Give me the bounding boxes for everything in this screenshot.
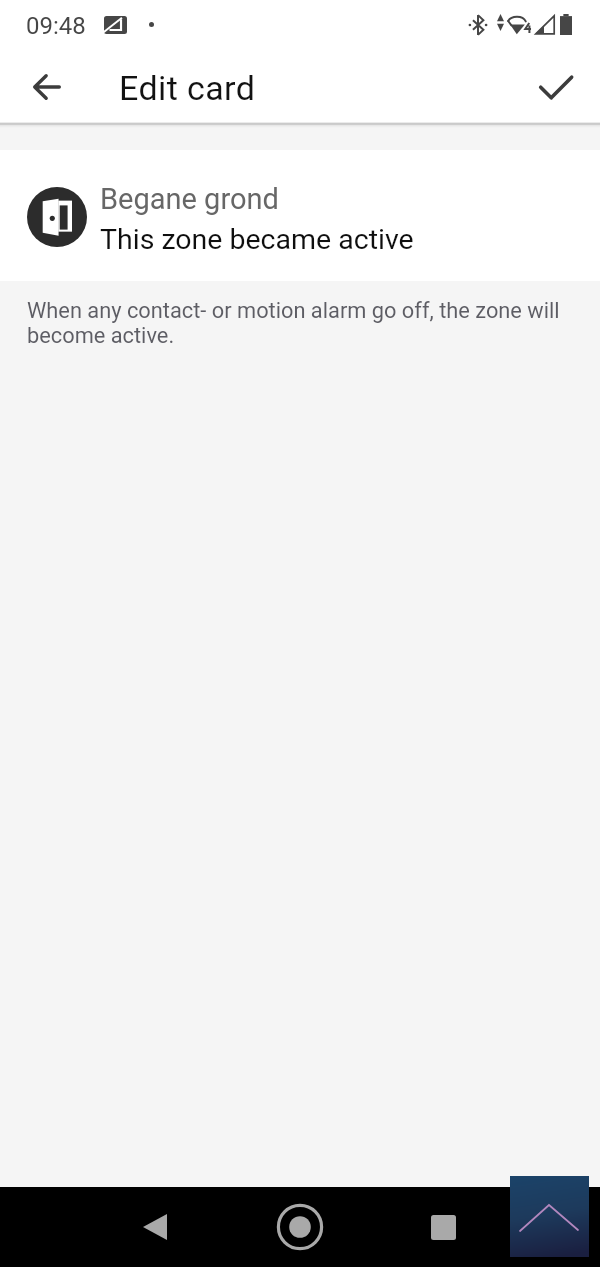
- button[interactable]: Back: [10, 50, 82, 122]
- staticText: Edit card: [119, 68, 256, 108]
- staticText: When any contact- or motion alarm go off…: [27, 298, 574, 348]
- staticText: This zone became active: [100, 223, 414, 256]
- staticText: 09:48: [26, 12, 86, 40]
- button[interactable]: Begane grond: [0, 150, 600, 281]
- button[interactable]: Recents: [403, 1187, 483, 1267]
- staticText: Begane grond: [100, 182, 279, 216]
- button[interactable]: Save: [520, 50, 592, 122]
- button[interactable]: Home: [260, 1187, 340, 1267]
- button[interactable]: Back: [115, 1187, 195, 1267]
